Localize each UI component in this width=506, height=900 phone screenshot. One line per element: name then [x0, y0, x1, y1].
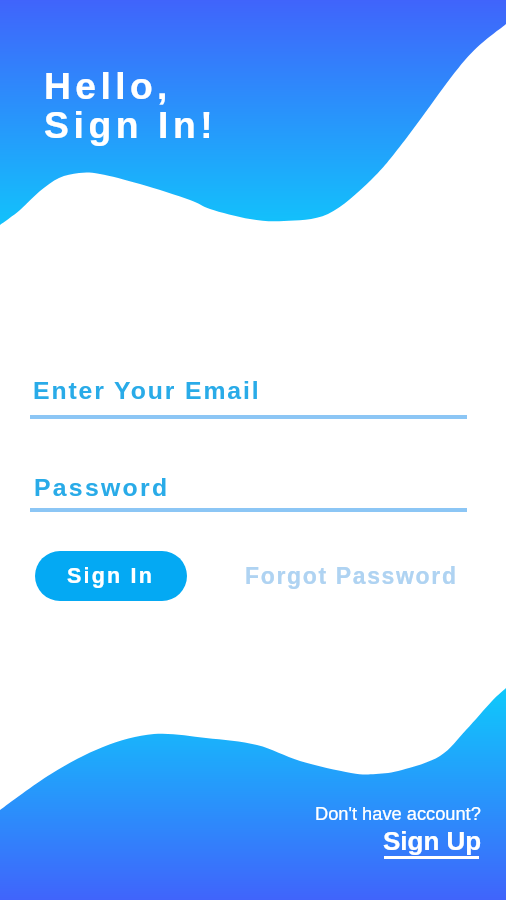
- staticText: Password: [34, 474, 170, 502]
- button[interactable]: Sign Up: [383, 826, 482, 855]
- staticText: Enter Your Email: [33, 377, 261, 405]
- staticText: Don't have account?: [315, 803, 481, 823]
- button[interactable]: Forgot Password: [245, 563, 458, 589]
- button[interactable]: Password: [30, 470, 467, 520]
- staticText: Sign Up: [383, 826, 482, 855]
- staticText: Hello,: [44, 65, 172, 107]
- staticText: Sign In: [67, 564, 155, 588]
- staticText: Sign In!: [44, 104, 218, 146]
- staticText: Forgot Password: [245, 563, 458, 589]
- button[interactable]: Sign In: [35, 551, 187, 601]
- button[interactable]: Enter Your Email: [30, 372, 467, 422]
